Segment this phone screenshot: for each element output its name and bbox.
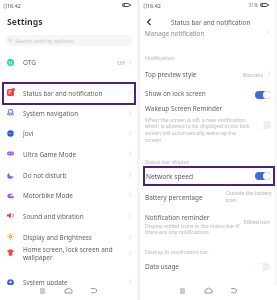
button[interactable]: [145, 168, 273, 184]
staticText: Top preview style: [145, 70, 277, 79]
staticText: Data usage: [145, 262, 277, 271]
staticText: Motorbike Mode: [23, 191, 223, 200]
button[interactable]: Back: [142, 15, 155, 28]
button[interactable]: Recent apps: [34, 284, 50, 297]
button[interactable]: Toggle on: [255, 91, 270, 99]
staticText: Manage notification: [145, 29, 277, 38]
staticText: Off: [99, 59, 125, 66]
button[interactable]: [140, 257, 277, 274]
staticText: Outside the battery icon: [226, 190, 274, 203]
button[interactable]: Toggle off: [255, 263, 270, 271]
button[interactable]: [0, 206, 137, 226]
button[interactable]: Toggle on: [255, 172, 270, 180]
staticText: Display edited icons in the status bar i…: [145, 222, 245, 236]
staticText: Display and Brightness: [23, 233, 223, 242]
button[interactable]: [140, 101, 277, 146]
button[interactable]: Search setting options: [5, 35, 133, 46]
button[interactable]: [0, 242, 137, 266]
button[interactable]: Toggle off: [256, 121, 271, 129]
staticText: Wakeup Screen Reminder: [145, 104, 277, 113]
staticText: System update: [23, 278, 223, 287]
staticText: Network speed: [146, 172, 277, 181]
staticText: 16:42: [147, 2, 277, 9]
button[interactable]: [0, 272, 137, 292]
button[interactable]: Home: [200, 284, 216, 297]
staticText: Display in notification bar: [145, 248, 277, 255]
staticText: Banners: [243, 71, 265, 78]
staticText: Sound and vibration: [23, 212, 223, 221]
staticText: 16:42: [7, 2, 207, 9]
button[interactable]: [140, 65, 277, 82]
button[interactable]: [0, 185, 137, 205]
button[interactable]: Home: [60, 284, 76, 297]
staticText: Do not disturb: [23, 171, 223, 180]
staticText: Notification reminder: [145, 213, 277, 222]
button[interactable]: Recent apps: [174, 284, 190, 297]
button[interactable]: Back: [86, 284, 102, 297]
staticText: Home screen, lock screen and wallpaper: [23, 245, 133, 262]
staticText: OTG: [23, 58, 223, 67]
button[interactable]: [4, 84, 134, 103]
staticText: Jovi: [23, 129, 223, 138]
button[interactable]: [0, 123, 137, 143]
button[interactable]: [140, 208, 277, 236]
staticText: Notification: [145, 54, 277, 61]
button[interactable]: [0, 227, 137, 247]
staticText: 31%: [246, 2, 258, 9]
button[interactable]: [140, 27, 277, 38]
staticText: Battery percentage: [145, 193, 277, 202]
staticText: When the screen is off, a new notificati…: [145, 116, 251, 144]
button[interactable]: [0, 103, 137, 123]
button[interactable]: Back: [226, 284, 242, 297]
staticText: Status bar and notification: [23, 89, 223, 98]
staticText: Status bar and notification: [171, 18, 277, 27]
staticText: Status bar display: [145, 158, 277, 165]
staticText: Settings: [7, 16, 207, 28]
staticText: Search setting options: [15, 37, 74, 45]
staticText: System navigation: [23, 109, 223, 118]
staticText: Ultra Game Mode: [23, 150, 223, 159]
button[interactable]: [0, 144, 137, 164]
button[interactable]: [140, 84, 277, 101]
button[interactable]: [0, 52, 137, 72]
staticText: Show on lock screen: [145, 89, 277, 98]
staticText: Edited icon: [244, 219, 274, 226]
button[interactable]: [0, 165, 137, 185]
button[interactable]: [140, 188, 277, 206]
